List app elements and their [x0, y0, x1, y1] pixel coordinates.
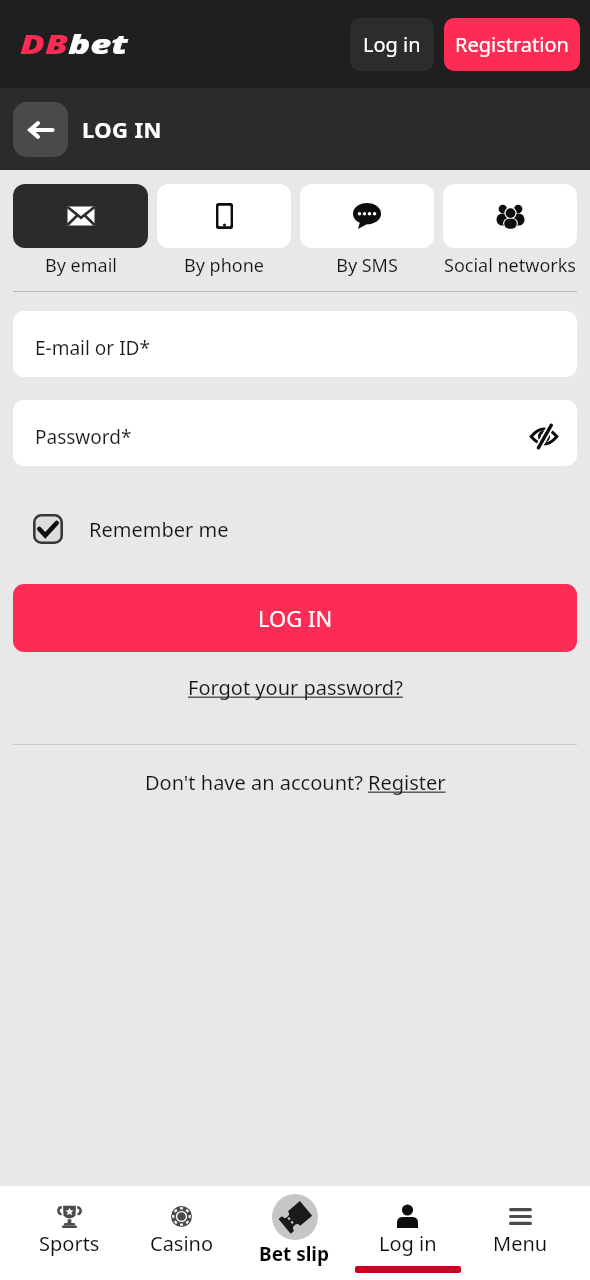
staticText: E-mail or ID* — [35, 335, 150, 361]
button[interactable]: Log in — [351, 1186, 464, 1280]
staticText: Log in — [363, 31, 421, 58]
staticText: Registration — [455, 31, 569, 58]
staticText: Remember me — [89, 516, 229, 543]
button[interactable]: Password* — [13, 400, 577, 466]
button[interactable]: Show password — [526, 418, 562, 454]
button[interactable]: Registration — [444, 18, 580, 71]
staticText: LOG IN — [82, 114, 162, 144]
staticText: Social networks — [444, 253, 576, 278]
button[interactable]: Back — [13, 102, 68, 157]
button[interactable]: LOG IN — [13, 584, 577, 652]
staticText: By phone — [184, 253, 264, 278]
button[interactable]: Sports — [13, 1186, 125, 1280]
button[interactable]: Bet slip — [238, 1186, 351, 1280]
staticText: Casino — [150, 1230, 214, 1257]
button[interactable]: Remember me — [33, 514, 229, 544]
button[interactable]: By SMS — [300, 184, 434, 278]
staticText: Bet slip — [259, 1241, 330, 1267]
staticText: Menu — [493, 1230, 548, 1257]
button[interactable]: By phone — [157, 184, 291, 278]
staticText: Password* — [35, 424, 132, 450]
staticText: By SMS — [336, 253, 398, 278]
button[interactable]: E-mail or ID* — [13, 311, 577, 377]
staticText: Don't have an account? — [145, 769, 363, 796]
staticText: By email — [45, 253, 117, 278]
button[interactable]: Forgot your password? — [188, 674, 403, 701]
staticText: bet — [68, 26, 128, 62]
button[interactable]: By email — [13, 184, 148, 278]
button[interactable]: Casino — [125, 1186, 238, 1280]
staticText: DB — [20, 26, 68, 62]
button[interactable]: Log in — [350, 18, 434, 71]
button[interactable]: Social networks — [443, 184, 577, 278]
staticText: Sports — [39, 1230, 100, 1257]
staticText: LOG IN — [258, 603, 333, 633]
button[interactable]: Menu — [464, 1186, 577, 1280]
staticText: Log in — [379, 1230, 437, 1257]
button[interactable]: Register — [368, 769, 446, 796]
